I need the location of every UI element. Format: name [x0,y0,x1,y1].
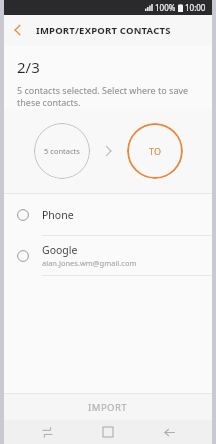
button[interactable]: Phone [4,194,212,235]
staticText: 2/3 [17,57,40,77]
staticText: IMPORT [88,401,128,414]
button[interactable]: TO [127,123,183,179]
staticText: 5 contacts selected. Select where to sav… [17,84,199,109]
button[interactable]: Back [4,17,30,43]
button[interactable]: IMPORT [4,394,212,420]
button[interactable]: Back [151,420,187,444]
staticText: 5 contacts [44,146,80,156]
staticText: alan.jones.wm@gmail.com [42,258,137,268]
staticText: 100% [155,2,176,13]
button[interactable]: 5 contacts [34,123,90,179]
button[interactable]: Recents [29,420,65,444]
staticText: Google [42,243,78,257]
staticText: Phone [42,208,74,222]
staticText: TO [149,145,161,157]
staticText: IMPORT/EXPORT CONTACTS [36,24,171,37]
staticText: 10:00 [185,2,206,13]
button[interactable]: Google [4,236,212,275]
button[interactable]: Home [90,420,126,444]
